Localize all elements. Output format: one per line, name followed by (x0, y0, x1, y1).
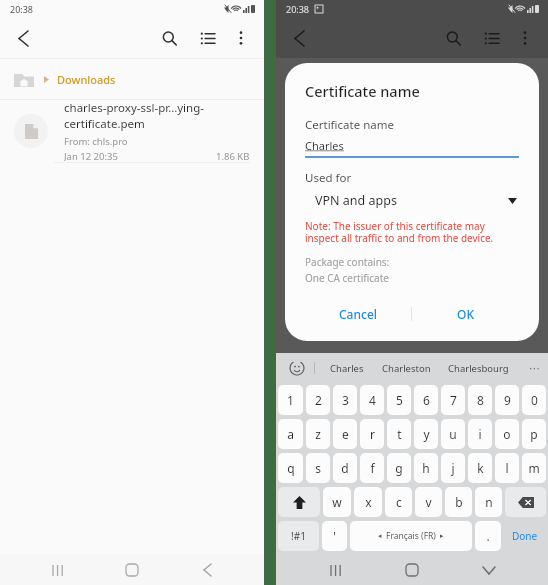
staticText: Charlesbourg (448, 362, 509, 375)
button[interactable]: Hide keyboard (472, 555, 506, 585)
staticText: x (365, 494, 372, 510)
staticText: b (455, 494, 463, 510)
staticText: Charles (305, 138, 344, 153)
button[interactable]: e (333, 419, 357, 449)
button[interactable]: o (495, 419, 519, 449)
button[interactable]: 7 (441, 385, 465, 415)
button[interactable]: 8 (468, 385, 492, 415)
staticText: a (287, 426, 294, 442)
staticText: Charleston (382, 362, 431, 375)
staticText: Cancel (339, 306, 378, 322)
staticText: 1 (287, 392, 294, 408)
staticText: 4 (369, 392, 376, 408)
button[interactable]: OK (412, 299, 519, 329)
button[interactable]: 6 (414, 385, 438, 415)
staticText: i (478, 426, 482, 442)
button[interactable]: Charles (328, 358, 366, 379)
button[interactable]: Recents (41, 555, 75, 585)
staticText: l (505, 460, 509, 476)
button[interactable]: c (385, 487, 412, 517)
staticText: 20:38 (10, 3, 34, 15)
staticText: Note: The issuer of this certificate may… (305, 219, 519, 245)
button[interactable]: VPN and apps (305, 192, 519, 209)
button[interactable]: t (387, 419, 411, 449)
button[interactable]: Shift (278, 487, 320, 517)
button[interactable]: m (522, 453, 546, 483)
button[interactable]: a (278, 419, 303, 449)
staticText: ▸ (440, 532, 444, 540)
button[interactable]: i (468, 419, 492, 449)
button[interactable]: Backspace (505, 487, 546, 517)
staticText: . (486, 528, 490, 544)
staticText: Used for (305, 170, 352, 186)
button[interactable]: Emoji (288, 359, 306, 377)
button[interactable]: k (468, 453, 492, 483)
button[interactable]: Search (154, 23, 184, 53)
button[interactable]: h (414, 453, 438, 483)
staticText: !#1 (291, 529, 306, 543)
staticText: OK (457, 306, 474, 322)
button[interactable]: Home (395, 555, 429, 585)
staticText: 9 (504, 392, 511, 408)
staticText: r (370, 426, 375, 442)
button[interactable]: Back (8, 23, 38, 53)
staticText: Package contains: (305, 255, 390, 269)
button[interactable]: Home (115, 555, 149, 585)
button[interactable]: n (475, 487, 502, 517)
button[interactable]: u (441, 419, 465, 449)
button[interactable]: Search (438, 23, 468, 53)
staticText: z (315, 426, 321, 442)
button[interactable]: Charlesbourg (446, 358, 511, 379)
button[interactable]: 2 (306, 385, 330, 415)
button[interactable]: 1 (278, 385, 303, 415)
button[interactable]: r (360, 419, 384, 449)
button[interactable]: charles-proxy-ssl-pr…ying-certificate.pe… (0, 100, 264, 162)
button[interactable]: d (333, 453, 357, 483)
button[interactable]: 5 (387, 385, 411, 415)
button[interactable]: View as list (476, 23, 506, 53)
button[interactable]: Back (284, 23, 314, 53)
button[interactable]: More options (510, 23, 540, 53)
staticText: charles-proxy-ssl-pr…ying-certificate.pe… (64, 100, 250, 132)
button[interactable]: y (414, 419, 438, 449)
staticText: f (370, 460, 375, 476)
staticText: q (287, 460, 295, 476)
button[interactable]: Space (350, 521, 472, 551)
staticText: t (397, 426, 402, 442)
button[interactable]: x (354, 487, 382, 517)
staticText: w (332, 494, 342, 510)
button[interactable]: j (441, 453, 465, 483)
button[interactable]: More options (226, 23, 256, 53)
button[interactable]: v (415, 487, 442, 517)
staticText: 8 (477, 392, 484, 408)
button[interactable]: !#1 (278, 521, 319, 551)
button[interactable]: q (278, 453, 303, 483)
button[interactable]: z (306, 419, 330, 449)
button[interactable]: . (475, 521, 501, 551)
staticText: VPN and apps (315, 192, 397, 209)
button[interactable]: b (445, 487, 472, 517)
staticText: n (485, 494, 493, 510)
button[interactable]: Downloads (0, 59, 264, 99)
button[interactable]: 3 (333, 385, 357, 415)
button[interactable]: w (323, 487, 351, 517)
button[interactable]: l (495, 453, 519, 483)
button[interactable]: Recents (319, 555, 353, 585)
button[interactable]: s (306, 453, 330, 483)
staticText: u (449, 426, 457, 442)
button[interactable]: Back (190, 555, 224, 585)
button[interactable]: View as list (192, 23, 222, 53)
button[interactable]: g (387, 453, 411, 483)
button[interactable]: f (360, 453, 384, 483)
staticText: ⋯ (529, 362, 540, 375)
button[interactable]: p (522, 419, 546, 449)
button[interactable]: Charleston (380, 358, 433, 379)
button[interactable]: Done (504, 521, 546, 551)
button[interactable]: ' (322, 521, 347, 551)
button[interactable]: Cancel (305, 299, 411, 329)
button[interactable]: 9 (495, 385, 519, 415)
staticText: Certificate name (305, 117, 394, 133)
button[interactable]: 4 (360, 385, 384, 415)
button[interactable]: More suggestions (524, 358, 544, 378)
button[interactable]: 0 (522, 385, 546, 415)
